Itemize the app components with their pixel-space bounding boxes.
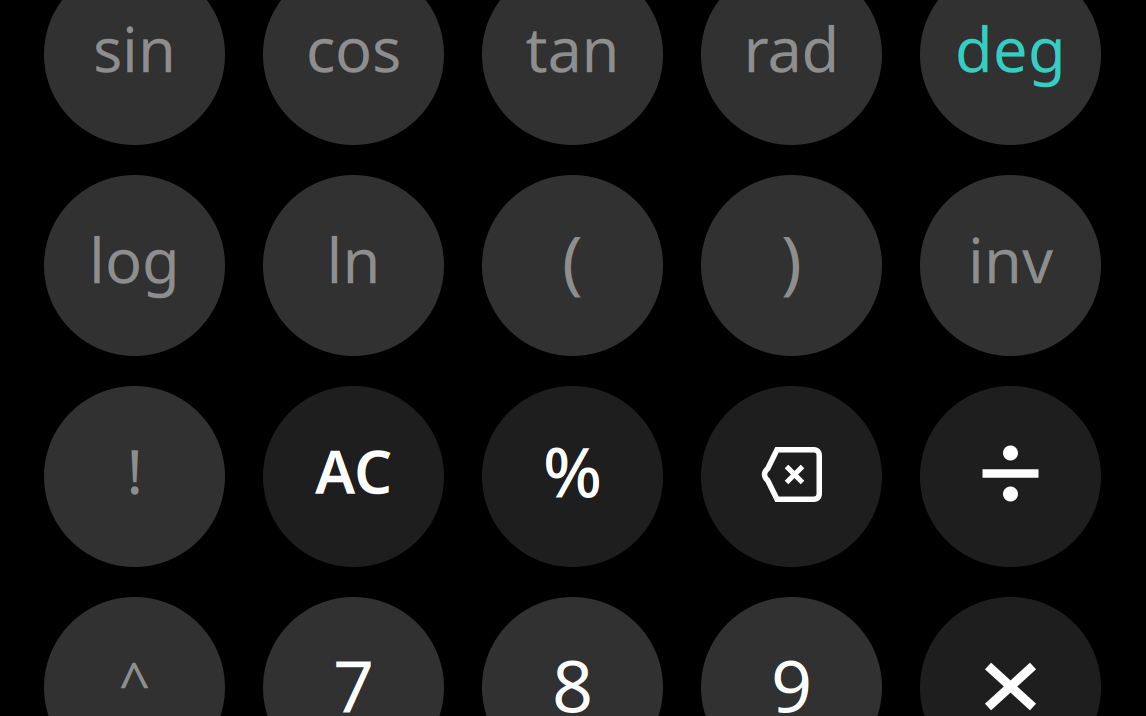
staticText: deg (955, 8, 1066, 89)
button[interactable]: Backspace (701, 386, 882, 567)
staticText: ln (326, 219, 380, 300)
staticText: AC (315, 431, 392, 510)
button[interactable]: % (482, 386, 663, 567)
button[interactable]: inv (920, 175, 1101, 356)
button[interactable]: ln (263, 175, 444, 356)
staticText: sin (93, 8, 176, 89)
staticText: 8 (552, 637, 593, 716)
button[interactable]: cos (263, 0, 444, 145)
staticText: inv (968, 219, 1053, 300)
staticText: 7 (333, 637, 374, 716)
staticText: % (543, 424, 602, 517)
button[interactable]: Divide (920, 386, 1101, 567)
staticText: log (89, 219, 180, 300)
staticText: ! (126, 430, 142, 511)
button[interactable]: ) (701, 175, 882, 356)
button[interactable]: ( (482, 175, 663, 356)
button[interactable]: sin (44, 0, 225, 145)
staticText: tan (525, 8, 619, 89)
button[interactable]: AC (263, 386, 444, 567)
button[interactable]: rad (701, 0, 882, 145)
button[interactable]: tan (482, 0, 663, 145)
button[interactable]: ! (44, 386, 225, 567)
button[interactable]: 9 (701, 597, 882, 716)
staticText: cos (306, 8, 401, 89)
button[interactable]: 7 (263, 597, 444, 716)
button[interactable]: Multiply (920, 597, 1101, 716)
button[interactable]: log (44, 175, 225, 356)
button[interactable]: ^ (44, 597, 225, 716)
staticText: ( (562, 213, 583, 306)
staticText: ) (781, 213, 802, 306)
button[interactable]: 8 (482, 597, 663, 716)
staticText: 9 (771, 637, 812, 716)
staticText: ^ (118, 644, 150, 716)
staticText: rad (743, 8, 839, 89)
button[interactable]: deg (920, 0, 1101, 145)
